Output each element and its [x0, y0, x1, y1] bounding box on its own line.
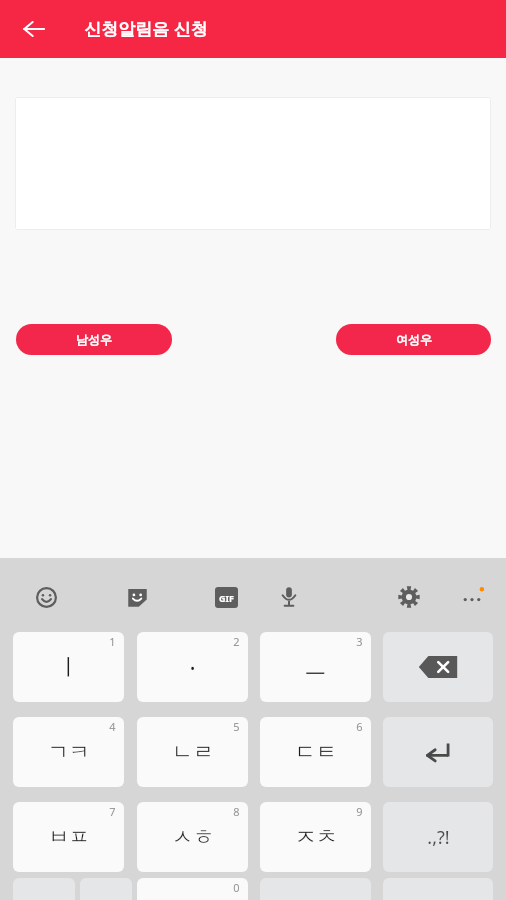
staticText: ㅅㅎ [172, 824, 214, 850]
staticText: ㄴㄹ [172, 739, 214, 765]
button[interactable]: 6 [260, 717, 371, 787]
button[interactable] [383, 632, 493, 702]
button[interactable]: Back [12, 7, 56, 51]
staticText: 1 [109, 634, 116, 649]
button[interactable]: Sticker [113, 573, 161, 621]
button[interactable]: 2 [137, 632, 248, 702]
staticText: ㄷㅌ [295, 739, 337, 765]
button[interactable]: 4 [13, 717, 124, 787]
button[interactable] [383, 717, 493, 787]
button[interactable]: Emoji [22, 573, 70, 621]
button[interactable]: Settings [385, 573, 433, 621]
staticText: 2 [233, 634, 240, 649]
button[interactable]: 남성우 [16, 324, 172, 355]
button[interactable]: 5 [137, 717, 248, 787]
button[interactable]: .,?! [383, 802, 493, 872]
staticText: 신청알림음 신청 [84, 17, 208, 40]
staticText: 8 [233, 804, 240, 819]
staticText: .,?! [427, 825, 450, 850]
staticText: 4 [109, 719, 116, 734]
staticText: ㅡ [304, 653, 327, 682]
staticText: 5 [233, 719, 240, 734]
button[interactable]: 1 [13, 632, 124, 702]
staticText: ㅣ [57, 653, 80, 682]
staticText: 9 [356, 804, 363, 819]
button[interactable]: GIF [202, 573, 250, 621]
staticText: ㅈㅊ [295, 824, 337, 850]
button[interactable]: 0 [137, 878, 248, 900]
button[interactable]: 여성우 [336, 324, 491, 355]
staticText: 여성우 [396, 332, 432, 347]
button[interactable]: 3 [260, 632, 371, 702]
button[interactable]: 9 [260, 802, 371, 872]
staticText: 0 [233, 880, 240, 895]
staticText: GIF [219, 592, 234, 604]
button[interactable]: More options [448, 573, 496, 621]
staticText: ㄱㅋ [48, 739, 90, 765]
staticText: ㅂㅍ [48, 824, 90, 850]
button[interactable]: 7 [13, 802, 124, 872]
staticText: · [189, 652, 196, 683]
staticText: 남성우 [76, 332, 112, 347]
button[interactable]: Voice input [265, 573, 313, 621]
button[interactable]: 8 [137, 802, 248, 872]
staticText: 6 [356, 719, 363, 734]
staticText: 7 [109, 804, 116, 819]
staticText: 3 [356, 634, 363, 649]
